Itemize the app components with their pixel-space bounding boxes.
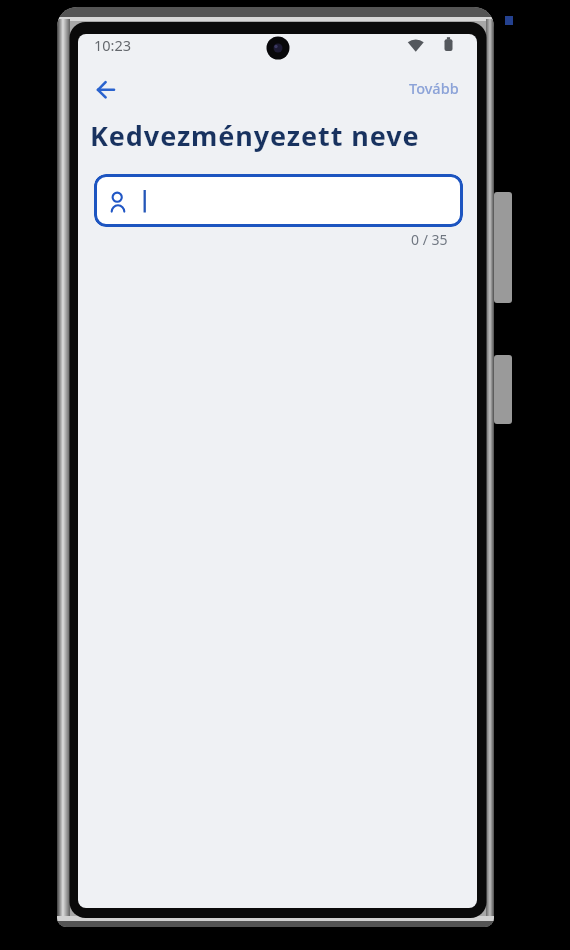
staticText: 10:23: [94, 35, 132, 55]
button[interactable]: Tovább: [409, 78, 459, 98]
button[interactable]: [90, 76, 122, 104]
staticText: Tovább: [409, 78, 459, 98]
button[interactable]: [94, 174, 463, 227]
staticText: 0 / 35: [411, 230, 448, 249]
staticText: Kedvezményezett neve: [90, 117, 420, 154]
